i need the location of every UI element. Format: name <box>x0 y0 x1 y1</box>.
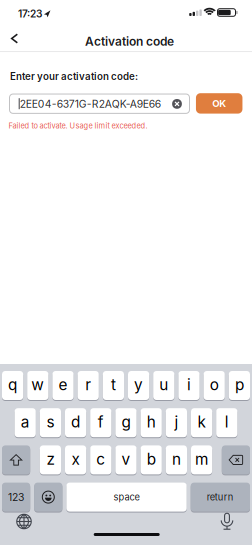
button[interactable]: z <box>40 445 61 475</box>
button[interactable]: b <box>141 445 162 475</box>
staticText: r <box>85 375 91 394</box>
button[interactable]: v <box>115 445 137 475</box>
staticText: i <box>187 375 191 394</box>
staticText: g <box>121 413 130 431</box>
staticText: f <box>98 413 104 431</box>
button[interactable]: q <box>2 370 23 400</box>
button[interactable]: f <box>90 408 111 438</box>
button[interactable]: s <box>40 408 61 438</box>
staticText: m <box>195 450 208 468</box>
button[interactable]: x <box>65 445 86 475</box>
staticText: OK <box>212 98 226 109</box>
staticText: h <box>147 413 156 431</box>
staticText: 2EE04-6371G-R2AQK-A9E66 <box>20 98 161 110</box>
button[interactable]: t <box>103 370 124 400</box>
button[interactable]: Activation code field <box>9 94 189 113</box>
button[interactable]: l <box>216 408 237 438</box>
staticText: l <box>225 413 229 431</box>
staticText: a <box>21 413 30 431</box>
button[interactable]: space <box>66 482 187 512</box>
staticText: y <box>134 375 143 394</box>
button[interactable]: k <box>191 408 212 438</box>
button[interactable]: Dictation <box>217 509 237 534</box>
staticText: w <box>31 375 44 394</box>
staticText: j <box>174 413 178 431</box>
button[interactable]: h <box>141 408 162 438</box>
button[interactable]: e <box>52 370 74 400</box>
staticText: z <box>46 450 54 468</box>
staticText: 123 <box>8 491 24 503</box>
button[interactable]: Shift <box>2 445 30 475</box>
staticText: v <box>121 450 130 468</box>
staticText: u <box>159 375 168 394</box>
staticText: Failed to activate. Usage limit exceeded… <box>8 121 147 130</box>
button[interactable]: r <box>78 370 99 400</box>
button[interactable]: return <box>191 482 250 512</box>
button[interactable]: 123 <box>2 482 30 512</box>
button[interactable]: OK <box>196 93 242 114</box>
button[interactable]: i <box>178 370 200 400</box>
button[interactable]: d <box>65 408 86 438</box>
button[interactable]: g <box>115 408 137 438</box>
button[interactable]: Clear text <box>172 99 182 109</box>
button[interactable]: o <box>204 370 225 400</box>
button[interactable]: a <box>15 408 36 438</box>
staticText: t <box>111 375 116 394</box>
button[interactable]: n <box>166 445 187 475</box>
staticText: k <box>198 413 206 431</box>
staticText: o <box>210 375 219 394</box>
button[interactable]: Back <box>6 28 23 49</box>
staticText: space <box>114 491 140 503</box>
staticText: e <box>58 375 67 394</box>
staticText: Enter your activation code: <box>10 71 138 82</box>
button[interactable]: p <box>229 370 250 400</box>
button[interactable]: j <box>166 408 187 438</box>
button[interactable]: y <box>128 370 149 400</box>
staticText: c <box>96 450 105 468</box>
staticText: return <box>207 491 234 503</box>
staticText: 17:23 <box>18 8 42 20</box>
staticText: x <box>72 450 80 468</box>
button[interactable]: m <box>191 445 212 475</box>
button[interactable]: w <box>27 370 48 400</box>
button[interactable]: Delete <box>222 445 250 475</box>
staticText: b <box>147 450 156 468</box>
staticText: d <box>71 413 80 431</box>
button[interactable]: Next keyboard <box>13 510 35 533</box>
staticText: Activation code <box>85 34 174 49</box>
staticText: s <box>46 413 54 431</box>
staticText: q <box>8 375 17 394</box>
staticText: n <box>172 450 181 468</box>
button[interactable]: Emoji <box>34 482 62 512</box>
button[interactable]: u <box>153 370 174 400</box>
staticText: p <box>235 375 244 394</box>
button[interactable]: c <box>90 445 111 475</box>
